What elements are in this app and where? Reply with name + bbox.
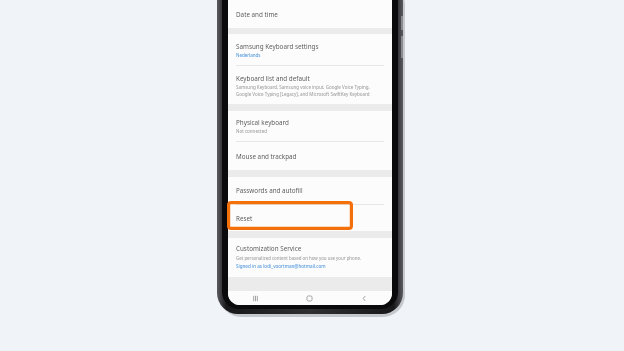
staticText: Not connected xyxy=(236,128,268,134)
staticText: Keyboard list and default xyxy=(236,74,310,83)
button[interactable]: Home xyxy=(282,291,337,305)
button[interactable]: Samsung Keyboard settings xyxy=(228,34,392,65)
staticText: Physical keyboard xyxy=(236,118,289,127)
staticText: Get personalized content based on how yo… xyxy=(236,255,362,261)
staticText: Date and time xyxy=(236,10,278,19)
staticText: Samsung Keyboard settings xyxy=(236,42,319,51)
button[interactable]: Reset xyxy=(228,205,392,231)
button[interactable]: Date and time xyxy=(228,0,392,28)
button[interactable]: Reset highlighted xyxy=(227,201,353,230)
button[interactable]: Passwords and autofill xyxy=(228,177,392,204)
button[interactable]: Recent apps xyxy=(228,291,282,305)
button[interactable]: Mouse and trackpad xyxy=(228,142,392,170)
staticText: Mouse and trackpad xyxy=(236,152,297,161)
button[interactable]: Back xyxy=(337,291,392,305)
staticText: Google Voice Typing [Legacy], and Micros… xyxy=(236,91,370,97)
staticText: Reset xyxy=(236,214,253,223)
staticText: Passwords and autofill xyxy=(236,186,303,195)
staticText: Samsung Keyboard, Samsung voice input, G… xyxy=(236,84,370,90)
button[interactable]: Physical keyboard xyxy=(228,111,392,141)
staticText: Signed in as lodi_voortman@hotmail.com xyxy=(236,263,326,269)
button[interactable]: Keyboard list and default xyxy=(228,66,392,104)
button[interactable]: Customization Service xyxy=(228,238,392,277)
staticText: Nederlands xyxy=(236,52,261,58)
staticText: Customization Service xyxy=(236,244,302,253)
